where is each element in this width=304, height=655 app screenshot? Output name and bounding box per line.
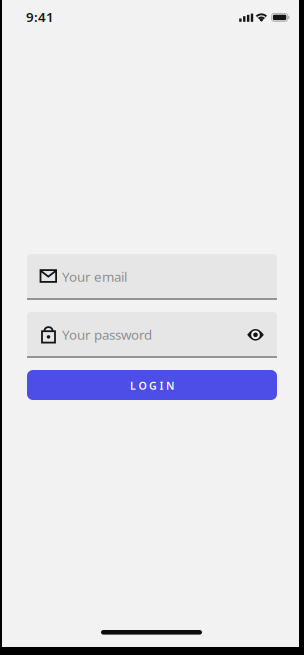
staticText: 9:41 (26, 8, 54, 26)
staticText: LOGIN (130, 378, 174, 393)
button[interactable]: Your password (27, 312, 277, 358)
button[interactable]: LOGIN (27, 370, 277, 400)
staticText: Your email (62, 268, 127, 285)
staticText: Your password (62, 326, 152, 343)
button[interactable]: Your email (27, 254, 277, 300)
button[interactable]: Show password (245, 328, 265, 341)
